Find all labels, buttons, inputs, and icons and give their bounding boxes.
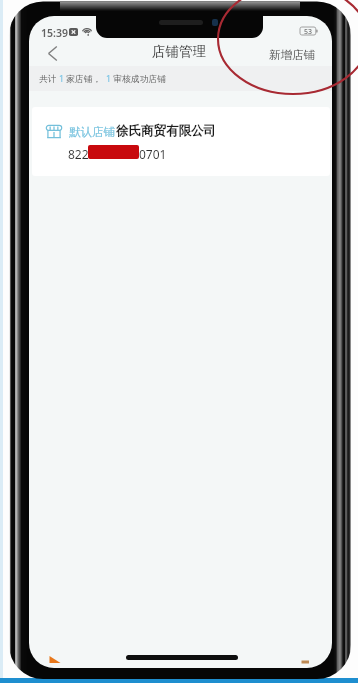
staticText: 15:39: [41, 26, 68, 40]
button[interactable]: 默认店铺: [32, 107, 330, 176]
staticText: 新增店铺: [269, 48, 315, 62]
button[interactable]: 新增店铺: [258, 42, 325, 68]
staticText: 徐氏商贸有限公司: [116, 123, 216, 139]
staticText: 共计 1 家店铺， 1 审核成功店铺: [39, 73, 167, 85]
staticText: 53: [304, 27, 313, 35]
staticText: 822: [68, 146, 89, 162]
staticText: 店铺管理: [152, 43, 206, 60]
staticText: 默认店铺: [69, 125, 115, 139]
staticText: 0701: [139, 146, 167, 162]
button[interactable]: Back: [33, 40, 71, 66]
